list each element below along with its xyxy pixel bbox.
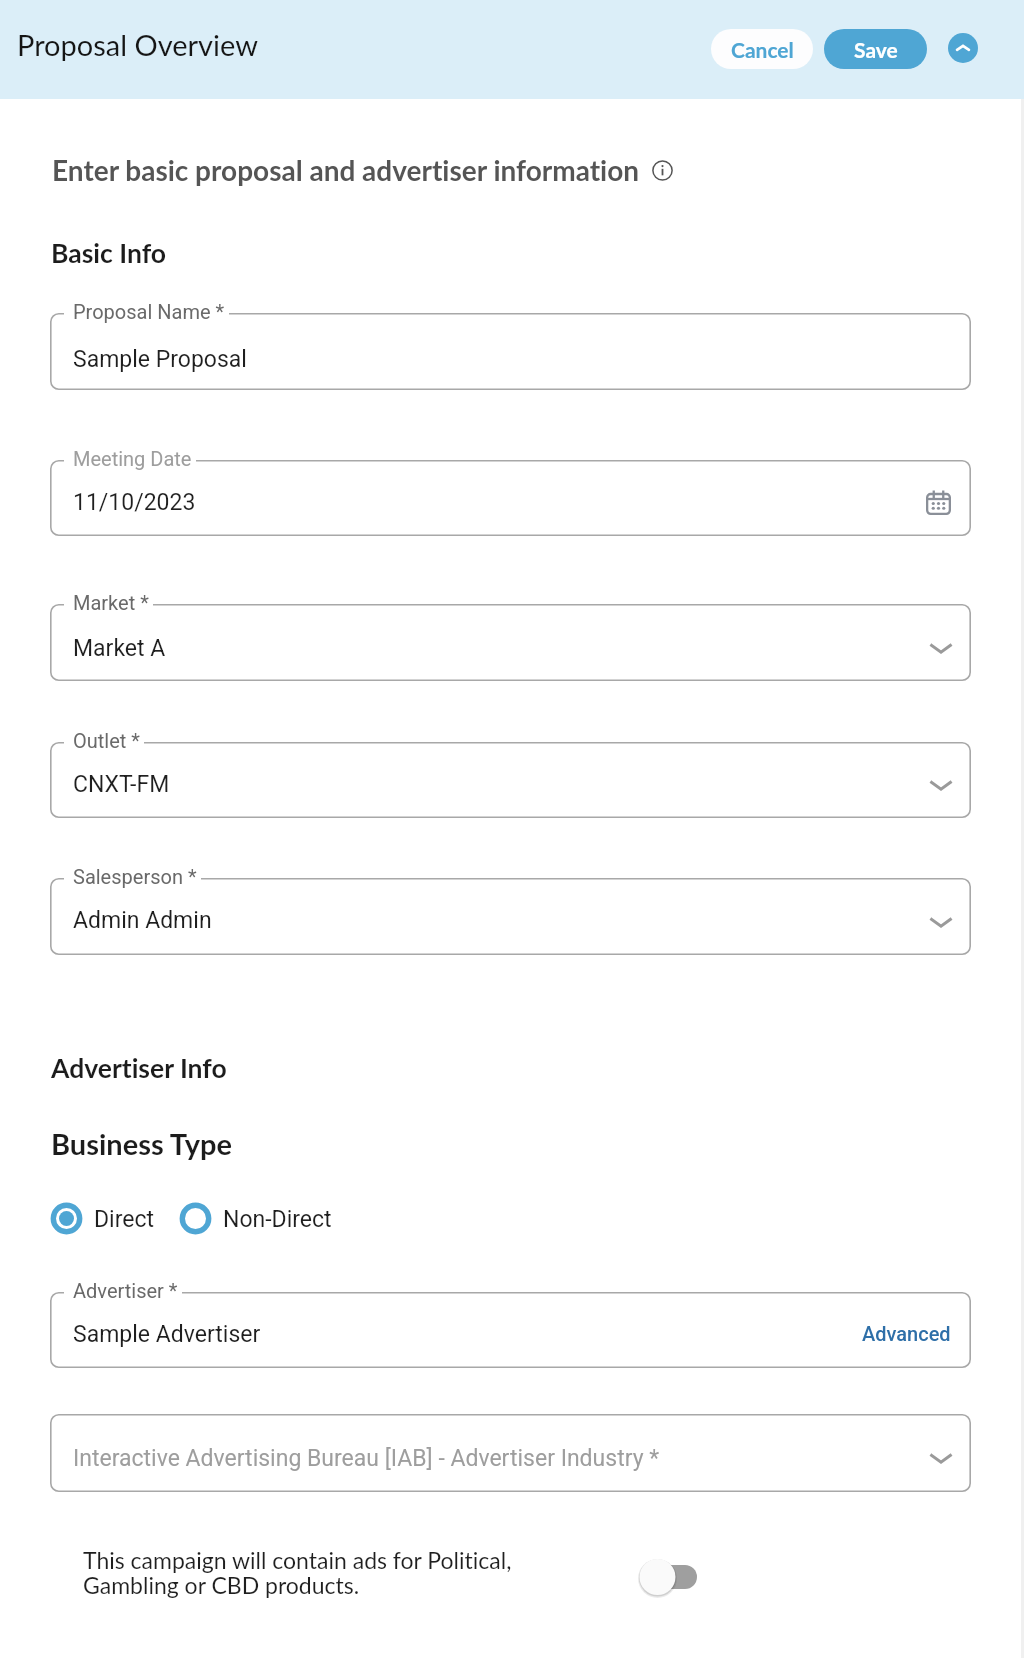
button[interactable]: CNXT-FM bbox=[50, 742, 971, 818]
staticText: Proposal Overview bbox=[17, 27, 258, 62]
staticText: Outlet * bbox=[73, 729, 140, 752]
button[interactable]: Save bbox=[824, 29, 927, 69]
staticText: Advertiser * bbox=[73, 1279, 178, 1302]
button[interactable]: Sample Advertiser bbox=[50, 1292, 971, 1368]
staticText: Advanced bbox=[862, 1322, 951, 1345]
staticText: Save bbox=[854, 37, 898, 62]
staticText: Proposal Name * bbox=[73, 300, 225, 323]
staticText: Interactive Advertising Bureau [IAB] - A… bbox=[73, 1445, 660, 1472]
button[interactable]: Political, Gambling or CBD products togg… bbox=[639, 1558, 697, 1598]
staticText: Basic Info bbox=[51, 237, 167, 269]
staticText: CNXT-FM bbox=[73, 771, 170, 798]
button[interactable]: Sample Proposal bbox=[50, 313, 971, 390]
staticText: 11/10/2023 bbox=[73, 489, 196, 516]
staticText: Sample Proposal bbox=[73, 346, 247, 373]
button[interactable]: Admin Admin bbox=[50, 878, 971, 955]
staticText: Market A bbox=[73, 635, 166, 662]
staticText: Market * bbox=[73, 591, 149, 614]
staticText: Cancel bbox=[731, 37, 794, 62]
staticText: Meeting Date bbox=[73, 447, 192, 470]
staticText: Admin Admin bbox=[73, 907, 212, 934]
button[interactable]: 11/10/2023 bbox=[50, 460, 971, 536]
button[interactable]: Interactive Advertising Bureau [IAB] - A… bbox=[50, 1414, 971, 1492]
staticText: Advertiser Info bbox=[51, 1052, 227, 1084]
staticText: Direct bbox=[94, 1206, 155, 1233]
staticText: Non-Direct bbox=[223, 1206, 332, 1233]
staticText: Sample Advertiser bbox=[73, 1321, 261, 1348]
button[interactable]: Non-Direct bbox=[179, 1200, 332, 1236]
button[interactable]: Cancel bbox=[711, 29, 813, 69]
staticText: Enter basic proposal and advertiser info… bbox=[52, 153, 640, 187]
staticText: Business Type bbox=[51, 1126, 233, 1161]
staticText: Salesperson * bbox=[73, 865, 197, 888]
button[interactable]: Market A bbox=[50, 604, 971, 681]
button[interactable]: Direct bbox=[50, 1200, 155, 1236]
button[interactable]: Collapse section bbox=[948, 33, 978, 63]
staticText: This campaign will contain ads for Polit… bbox=[83, 1546, 512, 1599]
